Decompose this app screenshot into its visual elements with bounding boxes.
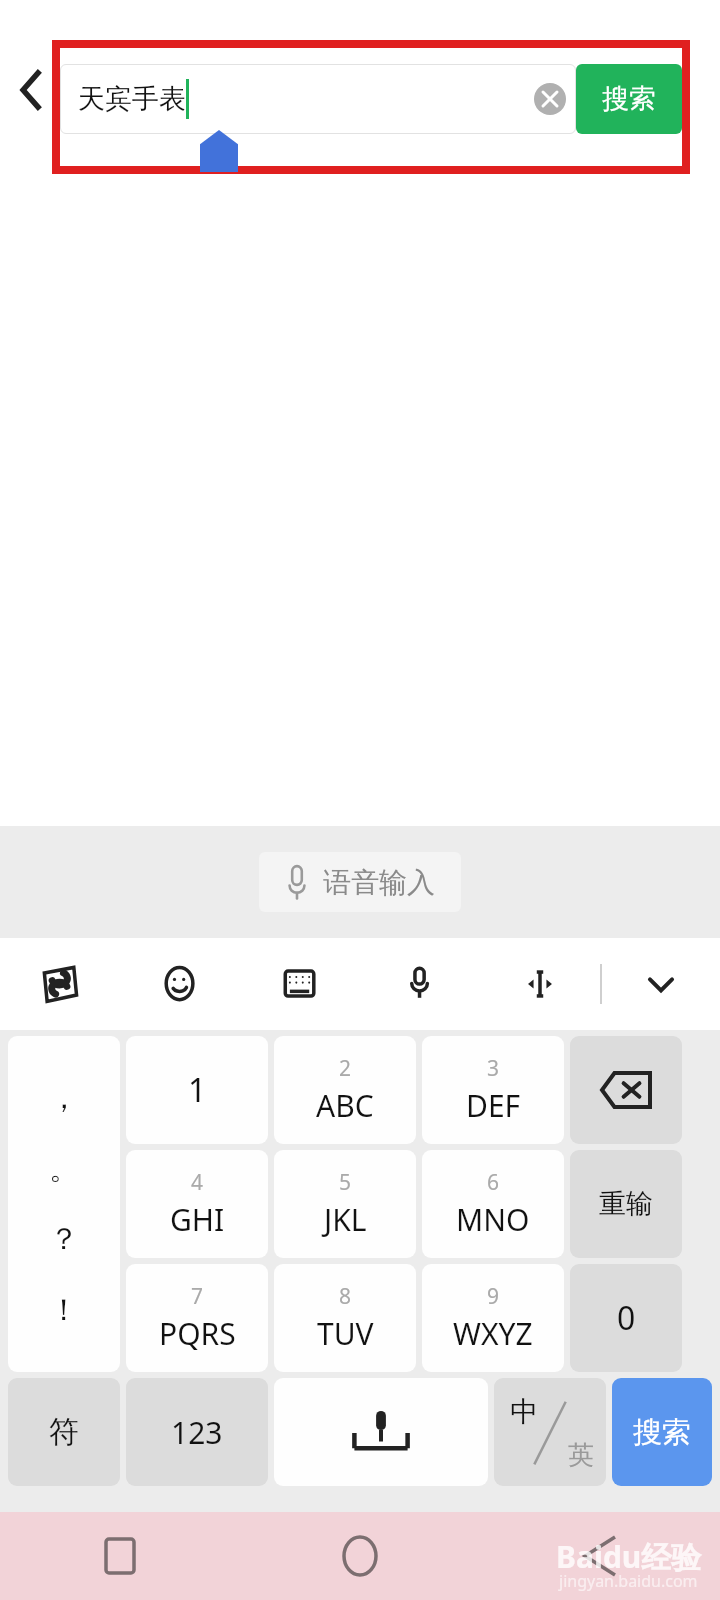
staticText: DEF [466,1085,521,1126]
staticText: TUV [317,1313,374,1354]
button[interactable]: 3 [422,1036,564,1144]
staticText: 7 [191,1282,204,1311]
button[interactable]: 5 [274,1150,416,1258]
staticText: 2 [339,1054,352,1083]
staticText: 中 [510,1394,538,1429]
staticText: 搜索 [633,1414,691,1451]
button[interactable]: 重输 [570,1150,682,1258]
button[interactable]: 7 [126,1264,268,1372]
staticText: 123 [171,1412,223,1453]
staticText: GHI [170,1199,225,1240]
button[interactable]: 6 [422,1150,564,1258]
button[interactable]: 中 [494,1378,606,1486]
staticText: 4 [191,1168,204,1197]
staticText: 语音输入 [323,865,435,900]
button[interactable]: 语音输入 [285,864,435,900]
staticText: PQRS [159,1313,236,1354]
button[interactable]: Space / voice [274,1378,488,1486]
button[interactable]: Recent apps [0,1512,240,1600]
button[interactable]: 8 [274,1264,416,1372]
staticText: JKL [324,1199,367,1240]
button[interactable]: 0 [570,1264,682,1372]
button[interactable]: Back [480,1512,720,1600]
button[interactable]: ， [8,1036,120,1372]
button[interactable]: Voice input [360,938,480,1030]
button[interactable]: 1 [126,1036,268,1144]
staticText: ABC [316,1085,374,1126]
staticText: ， [49,1079,79,1117]
button[interactable]: 9 [422,1264,564,1372]
staticText: 0 [617,1296,636,1340]
button[interactable]: Home [240,1512,480,1600]
staticText: 天宾手表 [78,82,186,116]
staticText: 重输 [599,1187,653,1221]
staticText: MNO [456,1199,530,1240]
button[interactable] [570,1036,682,1144]
button[interactable]: 4 [126,1150,268,1258]
button[interactable]: Hide keyboard [602,938,720,1030]
button[interactable]: 123 [126,1378,268,1486]
button[interactable]: 搜索 [576,64,682,134]
button[interactable]: Move cursor [480,938,600,1030]
button[interactable]: 2 [274,1036,416,1144]
button[interactable]: 天宾手表 [60,64,576,134]
button[interactable]: Back [8,67,54,113]
button[interactable]: Clear [534,83,566,115]
staticText: jingyan.baidu.com [559,1570,698,1592]
staticText: WXYZ [453,1313,533,1354]
staticText: 1 [188,1068,207,1112]
staticText: ？ [49,1220,79,1258]
staticText: 6 [487,1168,500,1197]
button[interactable]: Emoji [120,938,240,1030]
button[interactable]: Keyboard layout [240,938,360,1030]
button[interactable]: 搜索 [612,1378,712,1486]
staticText: Baidu经验 [556,1536,702,1577]
button[interactable]: Sogou input method [0,938,120,1030]
staticText: 英 [568,1439,594,1472]
staticText: 9 [487,1282,500,1311]
button[interactable]: 符 [8,1378,120,1486]
staticText: 3 [487,1054,500,1083]
staticText: 。 [49,1150,79,1188]
staticText: 5 [339,1168,352,1197]
staticText: 搜索 [602,82,656,116]
staticText: 符 [49,1413,79,1451]
staticText: 8 [339,1282,352,1311]
staticText: ！ [49,1291,79,1329]
